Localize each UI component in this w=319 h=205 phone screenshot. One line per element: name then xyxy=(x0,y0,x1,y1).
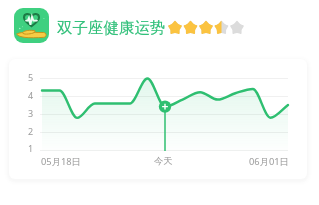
staticText: 2 xyxy=(28,125,34,137)
button[interactable]: 5 xyxy=(9,59,307,179)
staticText: 1 xyxy=(28,142,34,154)
staticText: 3 xyxy=(28,107,34,119)
staticText: 双子座健康运势 xyxy=(57,18,166,38)
staticText: 5 xyxy=(28,71,34,83)
button[interactable]: Health xyxy=(14,8,247,43)
staticText: 4 xyxy=(28,89,34,101)
staticText: 今天 xyxy=(154,155,173,167)
staticText: 05月18日 xyxy=(41,155,81,168)
other: Health xyxy=(14,8,49,43)
staticText: 06月01日 xyxy=(249,155,289,168)
